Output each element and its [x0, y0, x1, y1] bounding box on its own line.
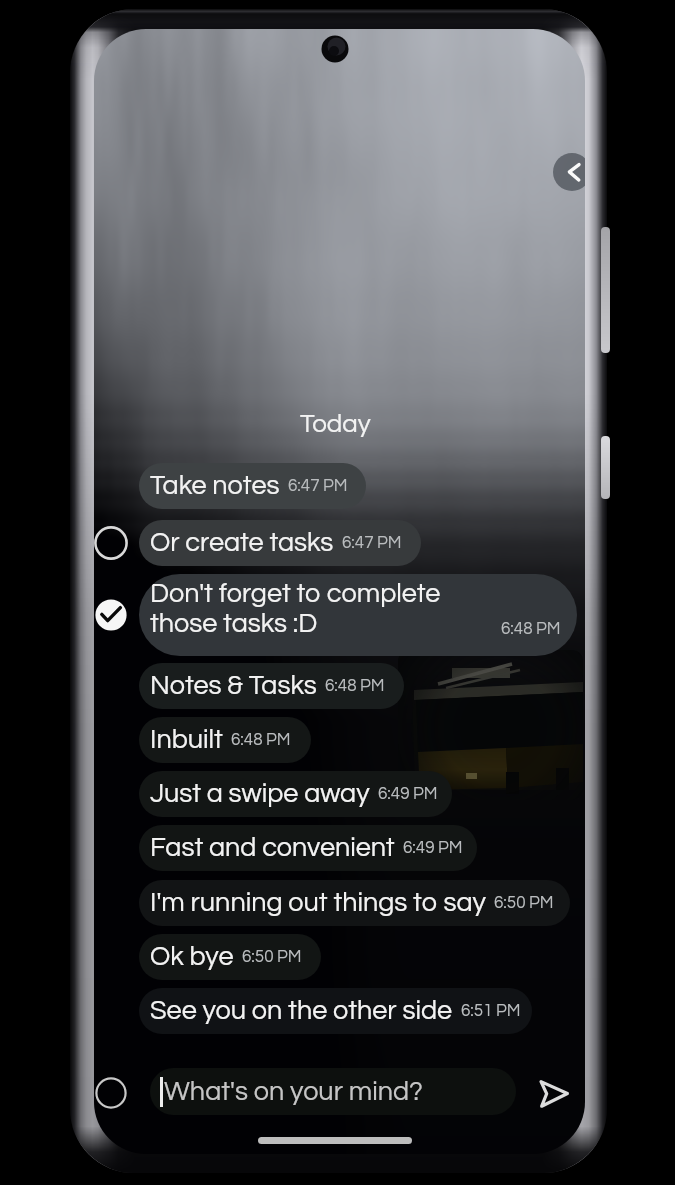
staticText: 6:48 PM	[325, 677, 385, 695]
button[interactable]: Or create tasks	[139, 520, 421, 566]
button[interactable]: Take notes	[139, 463, 366, 509]
button[interactable]: Just a swipe away	[139, 771, 452, 817]
button[interactable]: Inbuilt	[139, 717, 311, 763]
staticText: 6:47 PM	[288, 477, 348, 495]
button[interactable]: Back	[553, 153, 591, 191]
staticText: What's on your mind?	[164, 1078, 423, 1106]
staticText: Or create tasks	[150, 529, 334, 557]
staticText: 6:50 PM	[242, 948, 302, 966]
button[interactable]: Send	[534, 1076, 572, 1114]
button[interactable]: What's on your mind?	[150, 1068, 516, 1115]
button[interactable]: New task	[92, 1074, 130, 1112]
staticText: those tasks :D	[150, 610, 318, 638]
button[interactable]: Mark task complete	[91, 523, 131, 563]
staticText: I'm running out things to say	[150, 889, 486, 917]
staticText: 6:48 PM	[231, 731, 291, 749]
button[interactable]: Notes & Tasks	[139, 663, 404, 709]
button[interactable]: Task completed	[91, 595, 131, 635]
staticText: 6:49 PM	[378, 785, 438, 803]
button[interactable]: Don't forget to complete	[139, 574, 577, 656]
staticText: Ok bye	[150, 943, 234, 971]
staticText: 6:49 PM	[403, 839, 463, 857]
button[interactable]: Ok bye	[139, 934, 321, 980]
button[interactable]: See you on the other side	[139, 988, 532, 1034]
staticText: Today	[300, 411, 371, 438]
button[interactable]: I'm running out things to say	[139, 880, 570, 926]
staticText: Take notes	[150, 472, 280, 500]
staticText: Fast and convenient	[150, 834, 395, 862]
staticText: Don't forget to complete	[150, 580, 441, 608]
staticText: Just a swipe away	[150, 780, 370, 808]
staticText: See you on the other side	[150, 997, 453, 1025]
staticText: 6:51 PM	[461, 1002, 521, 1020]
staticText: Inbuilt	[150, 726, 223, 754]
staticText: 6:47 PM	[342, 534, 402, 552]
button[interactable]: Fast and convenient	[139, 825, 477, 871]
staticText: Notes & Tasks	[150, 672, 317, 700]
staticText: 6:48 PM	[501, 620, 561, 638]
staticText: 6:50 PM	[494, 894, 554, 912]
